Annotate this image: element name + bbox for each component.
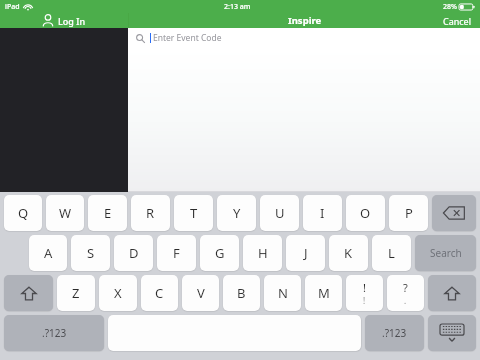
button[interactable]: U xyxy=(260,195,299,231)
button[interactable]: .?123 xyxy=(4,315,104,351)
staticText: ! xyxy=(363,280,366,295)
staticText: E xyxy=(104,204,112,222)
staticText: L xyxy=(388,244,395,262)
staticText: J xyxy=(304,244,308,262)
staticText: C xyxy=(155,284,164,302)
staticText: P xyxy=(405,204,413,222)
staticText: ? xyxy=(403,280,408,295)
button[interactable]: ? xyxy=(387,275,424,311)
button[interactable]: H xyxy=(243,235,282,271)
staticText: D xyxy=(129,244,139,262)
button[interactable]: Log In xyxy=(0,13,128,28)
button[interactable]: K xyxy=(329,235,368,271)
staticText: .?123 xyxy=(382,326,407,340)
staticText: Q xyxy=(18,204,29,222)
staticText: Z xyxy=(72,284,80,302)
button[interactable]: T xyxy=(174,195,213,231)
button[interactable]: A xyxy=(29,235,67,271)
button[interactable]: ! xyxy=(346,275,383,311)
staticText: Cancel xyxy=(443,15,472,27)
button[interactable]: Shift xyxy=(4,275,53,311)
staticText: M xyxy=(318,284,330,302)
staticText: N xyxy=(278,284,288,302)
staticText: iPad xyxy=(5,2,20,12)
button[interactable]: C xyxy=(141,275,178,311)
button[interactable]: Backspace xyxy=(432,195,476,231)
button[interactable]: Enter Event Code xyxy=(136,28,480,48)
button[interactable]: V xyxy=(182,275,219,311)
staticText: Enter Event Code xyxy=(153,32,222,44)
button[interactable]: B xyxy=(223,275,260,311)
button[interactable]: I xyxy=(303,195,342,231)
staticText: S xyxy=(87,244,95,262)
button[interactable]: N xyxy=(264,275,301,311)
button[interactable]: Hide keyboard xyxy=(428,315,476,351)
button[interactable]: Search xyxy=(415,235,476,271)
button[interactable]: X xyxy=(99,275,137,311)
button[interactable]: P xyxy=(389,195,428,231)
staticText: Y xyxy=(233,204,241,222)
staticText: I xyxy=(320,204,325,222)
button[interactable]: R xyxy=(131,195,170,231)
button[interactable]: G xyxy=(200,235,239,271)
staticText: O xyxy=(360,204,371,222)
button[interactable]: J xyxy=(286,235,325,271)
button[interactable]: Q xyxy=(4,195,42,231)
button[interactable]: O xyxy=(346,195,385,231)
button[interactable]: Cancel xyxy=(443,13,472,28)
button[interactable]: M xyxy=(305,275,342,311)
staticText: Inspire xyxy=(288,14,322,27)
staticText: ! xyxy=(363,295,366,306)
staticText: Search xyxy=(430,246,462,260)
staticText: U xyxy=(275,204,285,222)
staticText: K xyxy=(344,244,353,262)
button[interactable]: Z xyxy=(57,275,95,311)
staticText: T xyxy=(190,204,198,222)
staticText: W xyxy=(59,204,72,222)
staticText: A xyxy=(44,244,53,262)
button[interactable]: E xyxy=(88,195,127,231)
button[interactable]: L xyxy=(372,235,411,271)
staticText: .?123 xyxy=(42,326,67,340)
staticText: Log In xyxy=(58,15,86,27)
button[interactable]: Y xyxy=(217,195,256,231)
button[interactable]: .?123 xyxy=(365,315,424,351)
button[interactable]: D xyxy=(114,235,153,271)
staticText: X xyxy=(114,284,122,302)
staticText: . xyxy=(404,295,407,306)
button[interactable]: W xyxy=(46,195,84,231)
staticText: H xyxy=(258,244,268,262)
staticText: V xyxy=(197,284,205,302)
button[interactable]: S xyxy=(71,235,110,271)
staticText: R xyxy=(146,204,155,222)
staticText: 2:13 am xyxy=(224,2,251,12)
staticText: G xyxy=(215,244,225,262)
button[interactable]: F xyxy=(157,235,196,271)
staticText: F xyxy=(173,244,180,262)
button[interactable]: Shift xyxy=(428,275,476,311)
staticText: B xyxy=(237,284,246,302)
staticText: 28% xyxy=(443,2,457,12)
